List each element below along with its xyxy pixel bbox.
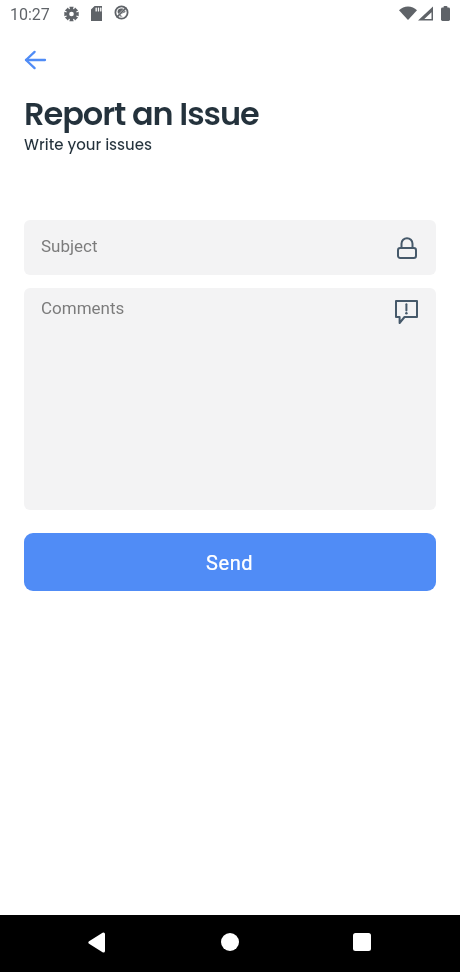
button[interactable]: Back [72, 918, 120, 966]
staticText: Write your issues [24, 134, 153, 155]
staticText: Comments [41, 298, 125, 318]
staticText: Report an Issue [24, 91, 259, 136]
button[interactable]: Send [24, 533, 436, 591]
button[interactable]: Home [206, 918, 254, 966]
staticText: Send [206, 551, 254, 574]
button[interactable]: Subject [24, 220, 436, 275]
staticText: 10:27 [10, 5, 50, 24]
button[interactable]: Back [13, 38, 57, 82]
staticText: Subject [41, 236, 98, 256]
button[interactable]: Recent apps [338, 918, 386, 966]
button[interactable]: Comments [24, 288, 436, 510]
